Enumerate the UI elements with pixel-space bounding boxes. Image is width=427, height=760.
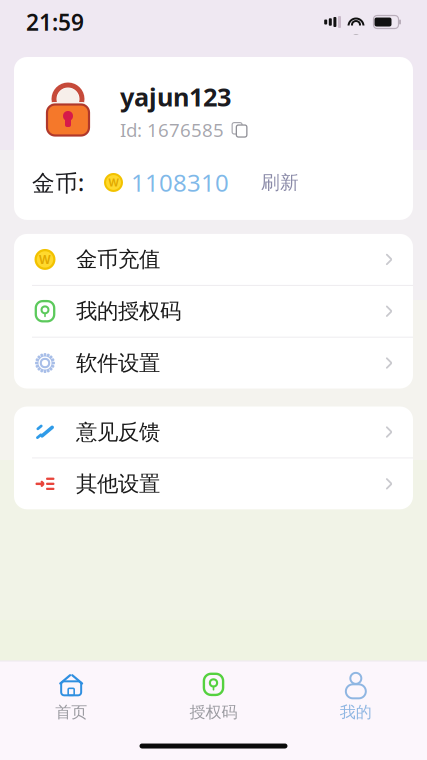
staticText: 金币:: [32, 167, 84, 197]
button[interactable]: 首页: [0, 663, 142, 732]
staticText: W: [39, 251, 51, 267]
staticText: 授权码: [189, 702, 237, 722]
staticText: 软件设置: [76, 350, 160, 376]
staticText: 1108310: [131, 166, 229, 198]
staticText: 21:59: [26, 7, 84, 37]
staticText: 首页: [55, 702, 87, 722]
button[interactable]: 我的授权码: [14, 286, 413, 337]
button[interactable]: 意见反馈: [14, 406, 413, 457]
staticText: yajun123: [120, 80, 231, 113]
button[interactable]: 其他设置: [14, 458, 413, 509]
staticText: 我的授权码: [76, 298, 181, 324]
staticText: 我的: [340, 702, 372, 722]
button[interactable]: 软件设置: [14, 337, 413, 388]
staticText: W: [108, 175, 118, 190]
staticText: 其他设置: [76, 471, 160, 497]
button[interactable]: 授权码: [142, 663, 285, 732]
button[interactable]: Copy ID: [120, 117, 247, 142]
button[interactable]: W: [14, 234, 413, 285]
staticText: 刷新: [261, 171, 299, 194]
staticText: Id: 1676585: [120, 117, 224, 142]
staticText: 金币充值: [76, 246, 160, 272]
button[interactable]: 我的: [285, 663, 427, 732]
staticText: 意见反馈: [76, 419, 160, 445]
button[interactable]: 刷新: [251, 165, 309, 200]
